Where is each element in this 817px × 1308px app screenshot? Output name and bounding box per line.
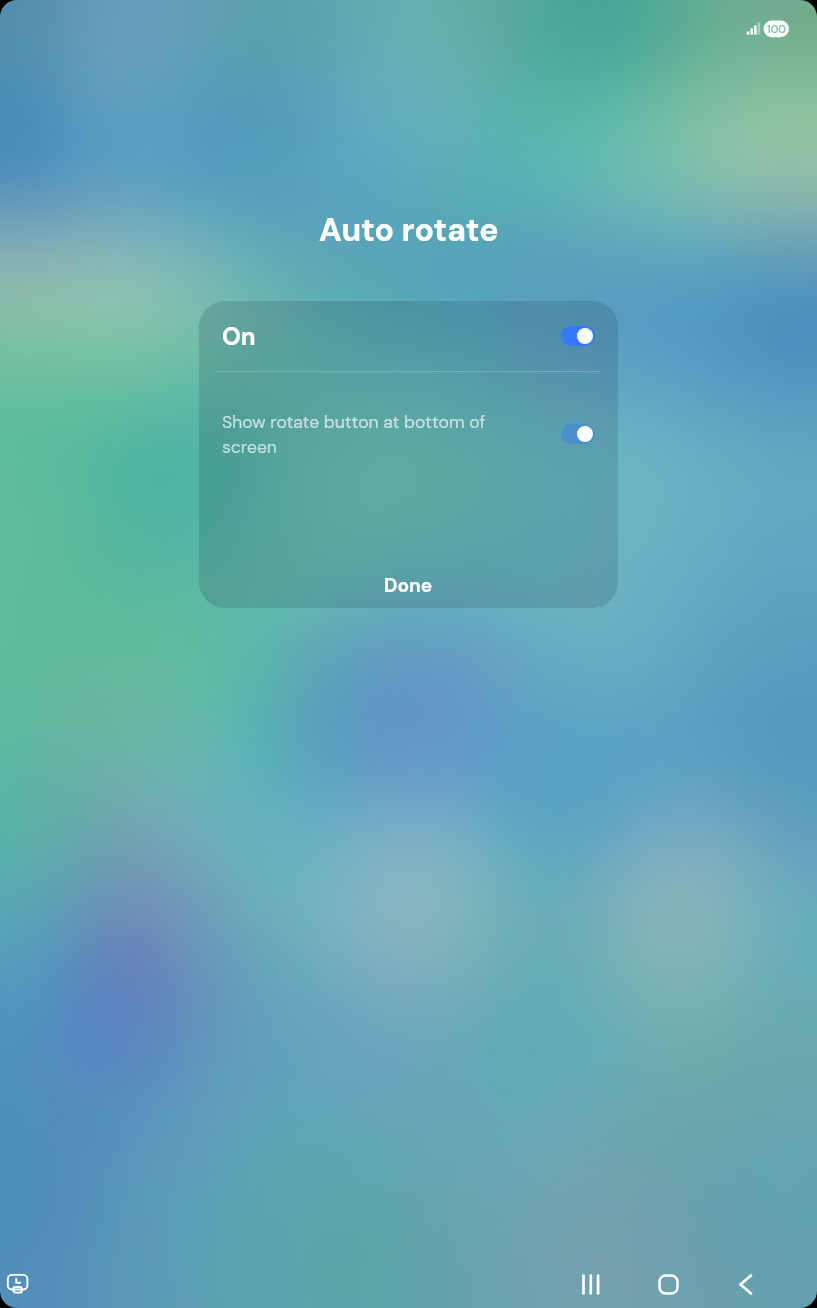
button[interactable]: Change keyboard xyxy=(3,1270,33,1300)
button[interactable]: Show rotate button xyxy=(561,424,595,444)
staticText: On xyxy=(222,321,256,352)
button[interactable]: Show rotate button at bottom of screen xyxy=(199,389,618,479)
button[interactable]: Back xyxy=(721,1260,770,1308)
button[interactable]: Home xyxy=(644,1260,693,1308)
staticText: Auto rotate xyxy=(319,209,499,251)
staticText: 100 xyxy=(764,22,789,36)
staticText: Done xyxy=(384,573,433,598)
button[interactable]: On xyxy=(199,301,618,371)
staticText: Show rotate button at bottom of screen xyxy=(222,411,500,458)
button[interactable]: Recent apps xyxy=(567,1260,616,1308)
button[interactable]: Auto rotate on xyxy=(561,326,595,346)
button[interactable]: Done xyxy=(199,563,618,608)
